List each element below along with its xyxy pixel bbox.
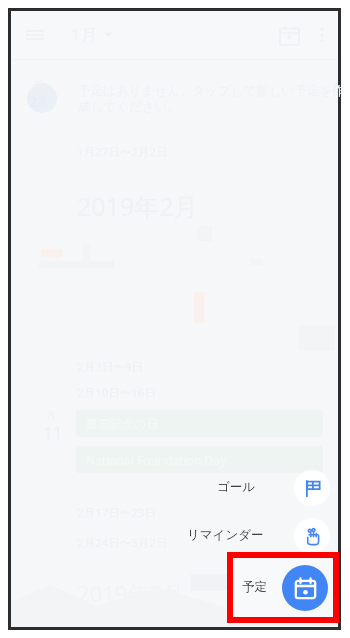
- staticText: 予定はありません。タップして新しい予定を作: [78, 83, 345, 99]
- button[interactable]: Reminder: [294, 518, 330, 554]
- staticText: リマインダー: [187, 527, 264, 543]
- staticText: 予定: [242, 579, 267, 595]
- staticText: 水: [33, 77, 42, 88]
- button[interactable]: Create event: [282, 565, 328, 611]
- button[interactable]: ゴール: [217, 479, 256, 495]
- button[interactable]: 予定: [242, 579, 267, 595]
- button[interactable]: Goal: [294, 470, 330, 506]
- staticText: ゴール: [217, 479, 256, 495]
- button[interactable]: リマインダー: [187, 527, 264, 543]
